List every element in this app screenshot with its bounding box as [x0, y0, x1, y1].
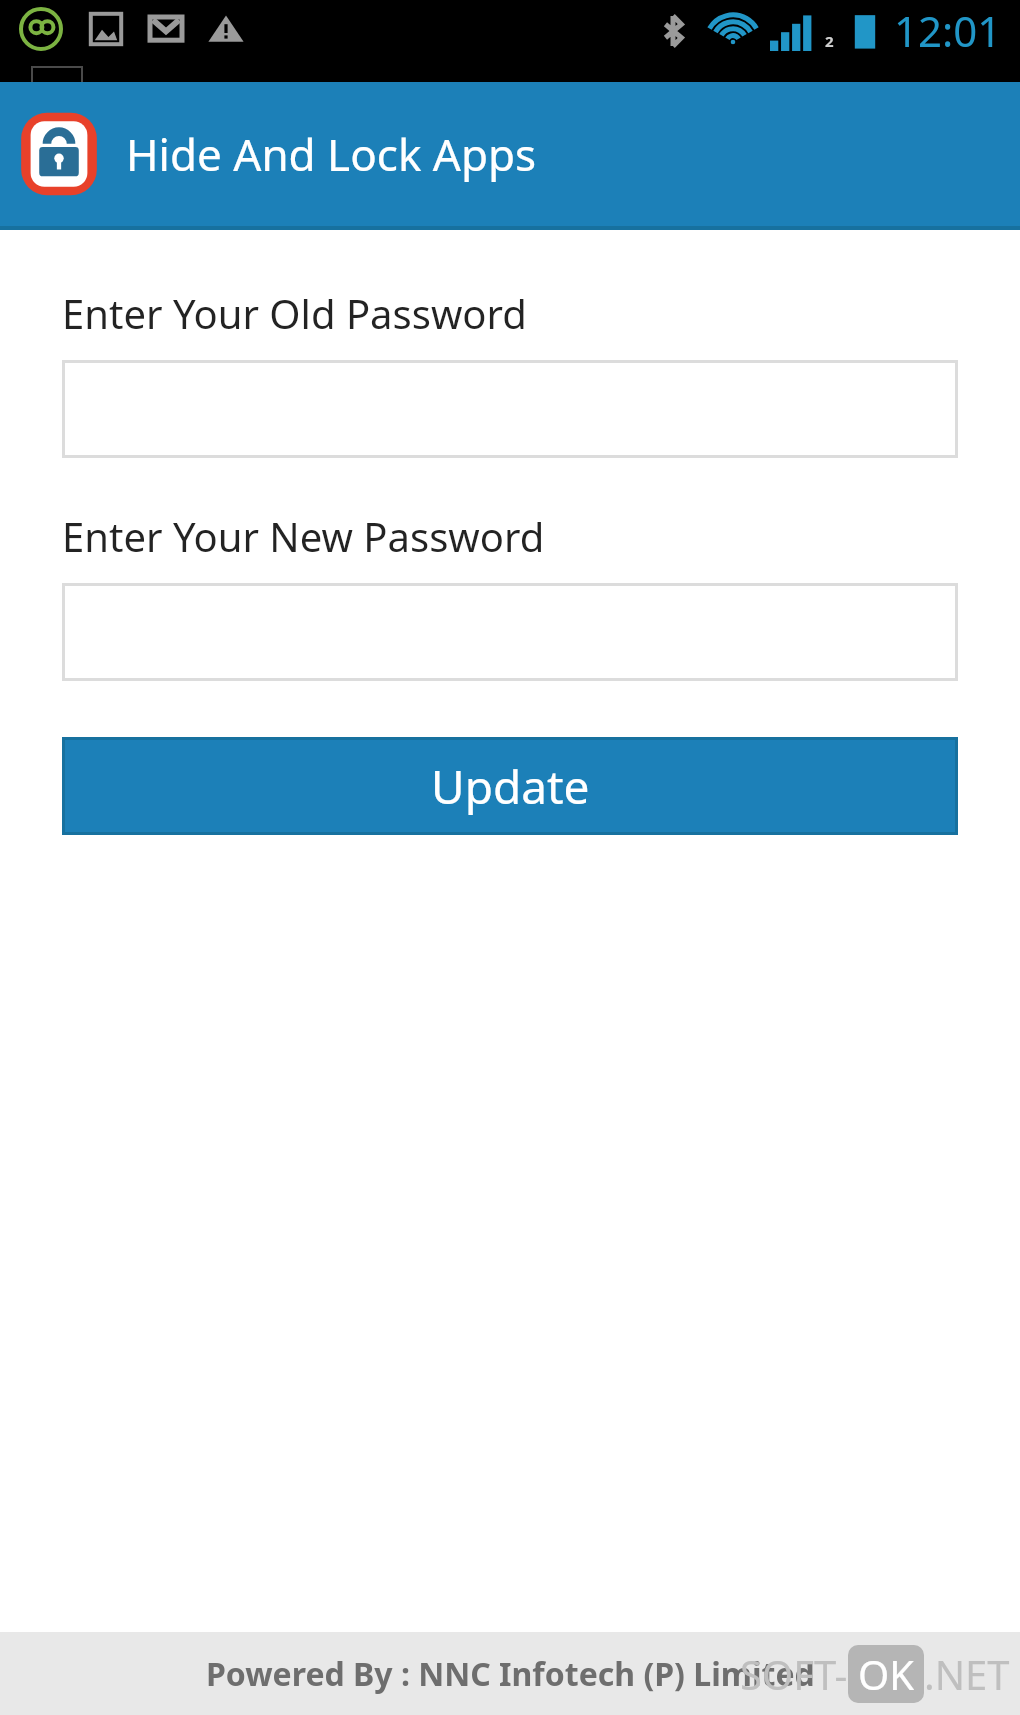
- button[interactable]: Password input: [62, 360, 958, 458]
- button[interactable]: App icon: [0, 82, 1020, 226]
- staticText: Enter Your New Password: [62, 509, 545, 563]
- staticText: OK: [858, 1647, 914, 1701]
- button[interactable]: Password input: [62, 583, 958, 681]
- staticText: Update: [431, 755, 590, 818]
- staticText: Powered By : NNC Infotech (P) Limited: [206, 1652, 815, 1696]
- other: App icon: [16, 111, 102, 197]
- staticText: Enter Your Old Password: [62, 286, 527, 340]
- staticText: Hide And Lock Apps: [126, 124, 537, 184]
- staticText: .NET: [924, 1647, 1010, 1701]
- button[interactable]: Update: [65, 740, 955, 832]
- staticText: SOFT-: [740, 1647, 848, 1701]
- staticText: 2: [825, 31, 834, 51]
- staticText: 12:01: [894, 2, 1002, 59]
